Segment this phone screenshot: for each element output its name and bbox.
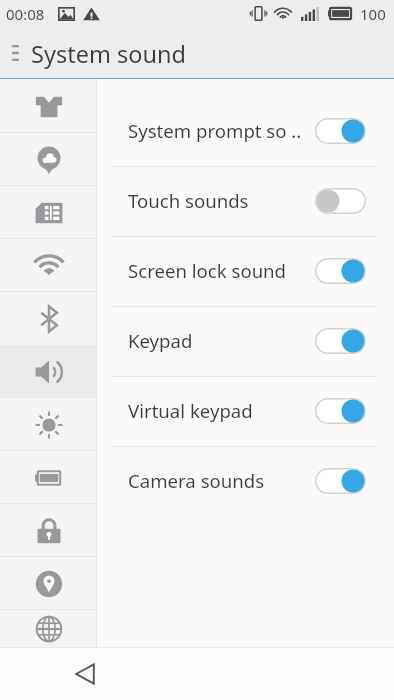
button[interactable]: Wi-Fi xyxy=(0,239,97,292)
staticText: 100 xyxy=(360,4,386,24)
button[interactable]: System prompt so .. xyxy=(97,97,394,167)
staticText: Virtual keypad xyxy=(128,398,253,423)
button[interactable]: Sound xyxy=(0,345,97,398)
staticText: System prompt so .. xyxy=(128,118,302,143)
button[interactable]: SIM card xyxy=(0,186,97,239)
button[interactable]: Camera sounds xyxy=(97,447,394,517)
button[interactable]: Menu xyxy=(0,27,31,78)
button[interactable]: Bluetooth xyxy=(0,292,97,345)
button[interactable]: Battery xyxy=(0,451,97,504)
staticText: System sound xyxy=(31,38,186,70)
staticText: Keypad xyxy=(128,328,193,353)
staticText: Screen lock sound xyxy=(128,258,287,283)
button[interactable]: Location xyxy=(0,557,97,610)
button[interactable]: Back xyxy=(63,652,107,696)
button[interactable]: Cloud xyxy=(0,133,97,186)
staticText: Camera sounds xyxy=(128,468,265,493)
staticText: 00:08 xyxy=(6,4,45,24)
button[interactable]: Screen lock xyxy=(0,504,97,557)
button[interactable]: Display xyxy=(0,80,97,133)
button[interactable]: Language xyxy=(0,610,97,648)
button[interactable]: Brightness xyxy=(0,398,97,451)
button[interactable]: Keypad xyxy=(97,307,394,377)
button[interactable]: Touch sounds xyxy=(97,167,394,237)
staticText: Touch sounds xyxy=(128,188,249,213)
button[interactable]: Virtual keypad xyxy=(97,377,394,447)
button[interactable]: Screen lock sound xyxy=(97,237,394,307)
